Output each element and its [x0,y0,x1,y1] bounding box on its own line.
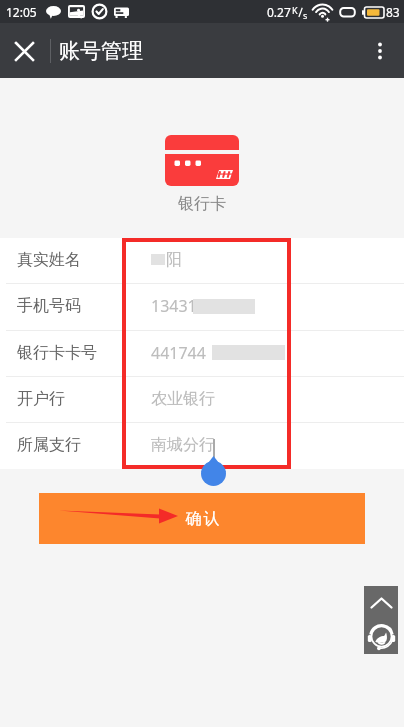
staticText: 0.27 [267,4,291,20]
button[interactable]: 手机号码 [0,284,404,330]
button[interactable]: 所属支行 [0,423,404,469]
button[interactable]: Close [0,27,48,75]
staticText: 农业银行 [151,389,215,409]
staticText: K [292,4,298,16]
staticText: 12:05 [6,4,37,20]
staticText: 南城分行 [151,435,215,455]
staticText: s [303,9,308,21]
button[interactable]: 真实姓名 [0,238,404,283]
staticText: 83 [386,4,400,20]
staticText: 手机号码 [17,296,81,316]
button[interactable]: Scroll to top [364,586,398,620]
button[interactable]: 银行卡卡号 [0,331,404,376]
staticText: 所属支行 [17,435,81,455]
staticText: 441744 [151,342,206,364]
button[interactable]: More options [356,27,404,75]
staticText: 13431 [151,295,197,317]
staticText: 开户行 [17,389,65,409]
staticText: 真实姓名 [17,250,81,270]
staticText: 确认 [185,509,220,529]
staticText: 银行卡卡号 [17,343,97,363]
button[interactable]: Customer service [364,620,398,654]
button[interactable]: 开户行 [0,377,404,422]
staticText: 阳 [166,250,182,270]
staticText: 账号管理 [59,38,143,64]
staticText: 银行卡 [178,194,226,214]
button[interactable]: 确认 [39,493,365,544]
